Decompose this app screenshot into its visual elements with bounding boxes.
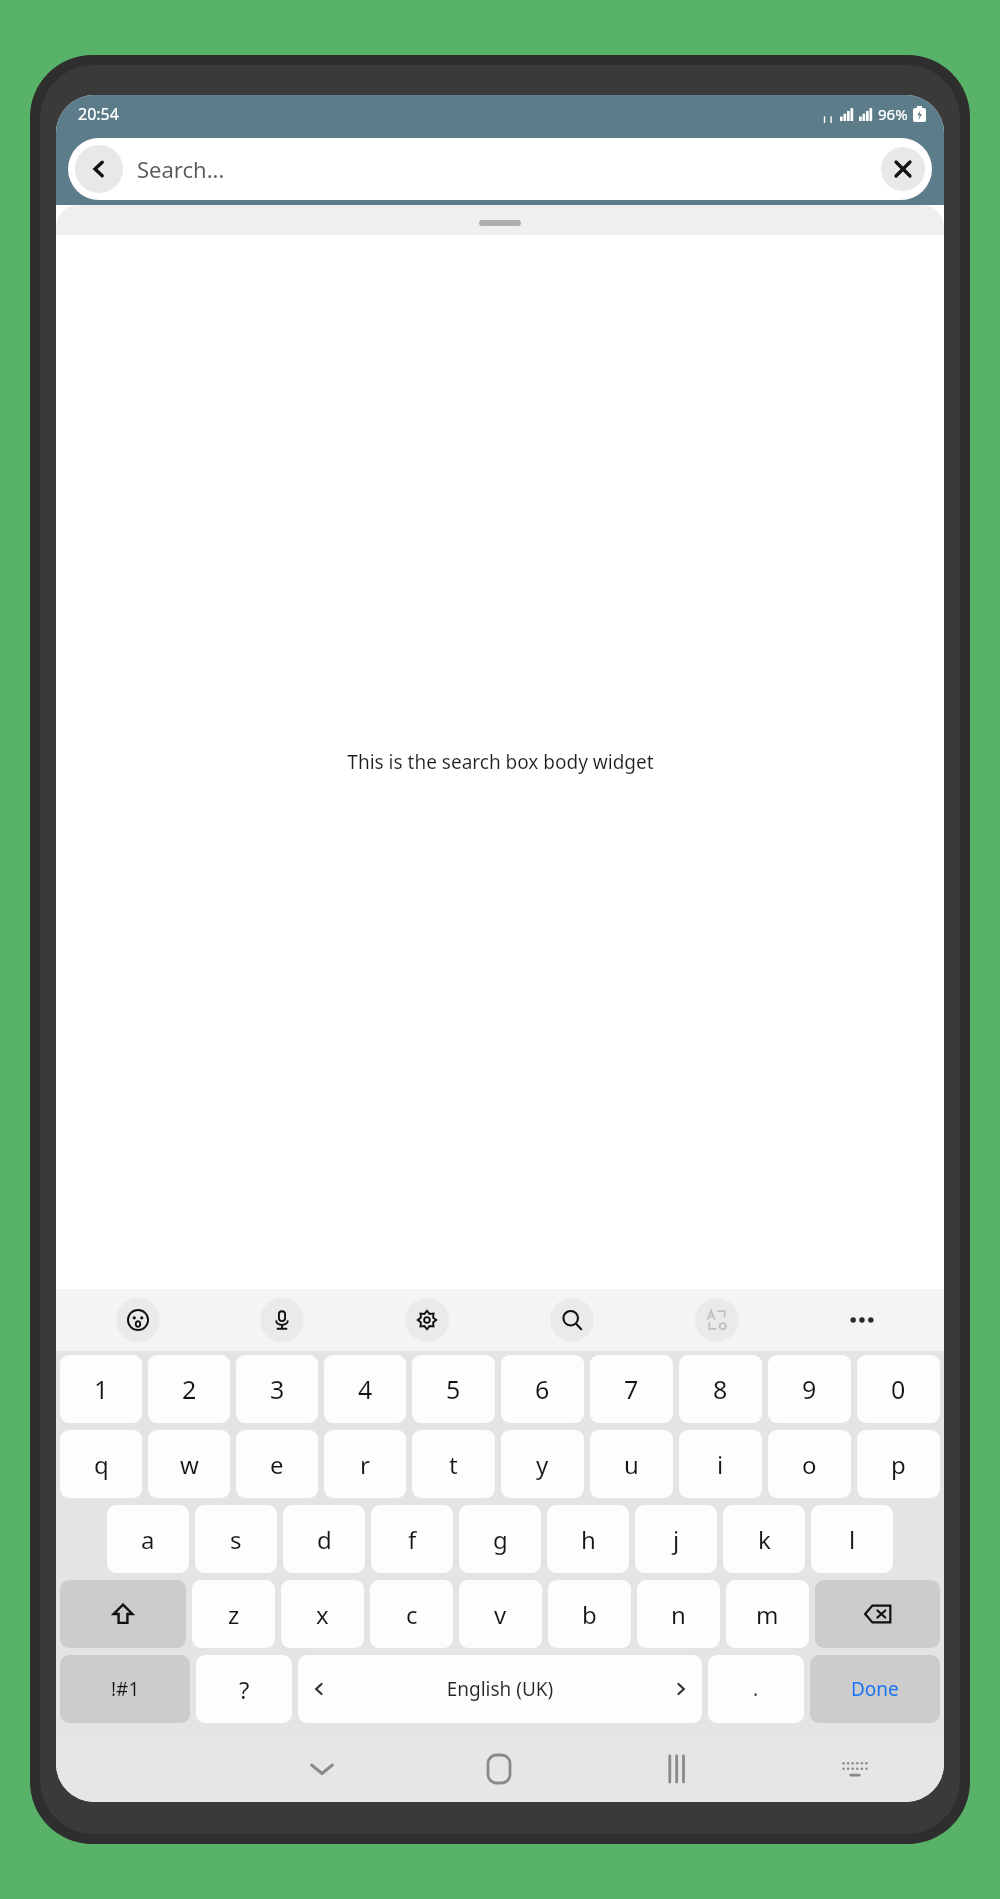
staticText: !#1 xyxy=(111,1676,140,1702)
staticText: w xyxy=(180,1448,199,1481)
button[interactable]: x xyxy=(281,1580,364,1648)
button[interactable]: Keyboard settings xyxy=(405,1298,449,1342)
button[interactable]: i xyxy=(679,1430,762,1498)
staticText: p xyxy=(891,1448,906,1481)
button[interactable]: 5 xyxy=(412,1355,495,1423)
staticText: ? xyxy=(239,1673,250,1706)
staticText: 6 xyxy=(535,1372,550,1406)
button[interactable]: 8 xyxy=(679,1355,762,1423)
button[interactable]: Backspace xyxy=(815,1580,940,1648)
button[interactable]: Recent apps xyxy=(588,1736,766,1802)
staticText: 9 xyxy=(802,1372,817,1406)
button[interactable]: Back xyxy=(75,145,123,193)
staticText: m xyxy=(756,1598,779,1631)
button[interactable]: Search xyxy=(550,1298,594,1342)
button[interactable]: o xyxy=(768,1430,851,1498)
staticText: h xyxy=(581,1523,596,1556)
button[interactable]: g xyxy=(459,1505,541,1573)
button[interactable]: p xyxy=(857,1430,940,1498)
staticText: 0 xyxy=(891,1372,906,1406)
staticText: f xyxy=(408,1523,417,1556)
button[interactable]: English (UK) xyxy=(298,1655,702,1723)
staticText: r xyxy=(360,1448,370,1481)
button[interactable]: b xyxy=(548,1580,631,1648)
staticText: e xyxy=(270,1448,284,1481)
button[interactable]: r xyxy=(324,1430,406,1498)
button[interactable]: n xyxy=(637,1580,720,1648)
staticText: l xyxy=(849,1523,856,1556)
staticText: i xyxy=(717,1448,724,1481)
button[interactable]: e xyxy=(236,1430,318,1498)
staticText: q xyxy=(94,1448,109,1481)
button[interactable]: Back xyxy=(68,138,932,200)
staticText: 5 xyxy=(446,1372,461,1406)
button[interactable]: l xyxy=(811,1505,893,1573)
staticText: u xyxy=(624,1448,639,1481)
staticText: a xyxy=(141,1523,155,1556)
staticText: 20:54 xyxy=(78,103,119,125)
button[interactable]: Translate xyxy=(695,1298,739,1342)
staticText: 1 xyxy=(94,1372,109,1406)
button[interactable]: 9 xyxy=(768,1355,851,1423)
button[interactable]: j xyxy=(635,1505,717,1573)
staticText: 4 xyxy=(358,1372,373,1406)
button[interactable]: k xyxy=(723,1505,805,1573)
staticText: x xyxy=(316,1598,329,1631)
staticText: . xyxy=(753,1676,759,1702)
staticText: c xyxy=(406,1598,418,1631)
staticText: 7 xyxy=(624,1372,639,1406)
staticText: Done xyxy=(851,1676,899,1702)
staticText: Search... xyxy=(137,154,881,184)
button[interactable]: Shift xyxy=(60,1580,186,1648)
staticText: 96% xyxy=(878,104,908,124)
button[interactable]: . xyxy=(708,1655,804,1723)
button[interactable]: More options xyxy=(840,1298,884,1342)
staticText: d xyxy=(317,1523,332,1556)
button[interactable]: z xyxy=(192,1580,275,1648)
button[interactable]: Hide keyboard xyxy=(233,1736,410,1802)
button[interactable]: s xyxy=(195,1505,277,1573)
button[interactable]: w xyxy=(148,1430,230,1498)
staticText: b xyxy=(582,1598,597,1631)
button[interactable]: m xyxy=(726,1580,809,1648)
staticText: This is the search box body widget xyxy=(347,749,654,775)
staticText: j xyxy=(673,1523,680,1556)
button[interactable]: f xyxy=(371,1505,453,1573)
button[interactable]: u xyxy=(590,1430,673,1498)
staticText: g xyxy=(493,1523,508,1556)
button[interactable]: Clear search xyxy=(881,147,925,191)
button[interactable]: Change keyboard xyxy=(766,1736,944,1802)
button[interactable]: t xyxy=(412,1430,495,1498)
button[interactable]: 1 xyxy=(60,1355,142,1423)
button[interactable]: a xyxy=(107,1505,189,1573)
button[interactable]: ? xyxy=(196,1655,292,1723)
button[interactable]: v xyxy=(459,1580,542,1648)
button[interactable]: 6 xyxy=(501,1355,584,1423)
staticText: 2 xyxy=(182,1372,197,1406)
button[interactable]: 4 xyxy=(324,1355,406,1423)
staticText: 8 xyxy=(713,1372,728,1406)
staticText: v xyxy=(494,1598,507,1631)
staticText: z xyxy=(228,1598,240,1631)
staticText: k xyxy=(758,1523,771,1556)
button[interactable]: Done xyxy=(810,1655,940,1723)
button[interactable]: 7 xyxy=(590,1355,673,1423)
button[interactable]: y xyxy=(501,1430,584,1498)
button[interactable]: Voice input xyxy=(260,1298,304,1342)
button[interactable]: Emoji xyxy=(116,1298,160,1342)
button[interactable]: q xyxy=(60,1430,142,1498)
staticText: n xyxy=(671,1598,686,1631)
staticText: y xyxy=(536,1448,549,1481)
button[interactable]: 0 xyxy=(857,1355,940,1423)
staticText: s xyxy=(230,1523,242,1556)
staticText: t xyxy=(449,1448,458,1481)
staticText: o xyxy=(802,1448,817,1481)
button[interactable]: !#1 xyxy=(60,1655,190,1723)
button[interactable]: Home xyxy=(410,1736,588,1802)
button[interactable]: 2 xyxy=(148,1355,230,1423)
staticText: English (UK) xyxy=(326,1676,674,1702)
button[interactable]: c xyxy=(370,1580,453,1648)
button[interactable]: h xyxy=(547,1505,629,1573)
button[interactable]: d xyxy=(283,1505,365,1573)
button[interactable]: 3 xyxy=(236,1355,318,1423)
